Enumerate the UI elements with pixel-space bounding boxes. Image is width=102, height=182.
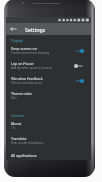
staticText: Translate [11, 136, 27, 141]
staticText: Lap on Pause [11, 61, 34, 66]
staticText: Theme color [11, 91, 33, 96]
staticText: Help us with translations [11, 141, 44, 145]
staticText: Vibration feedback [11, 76, 43, 81]
button[interactable]: All applications [6, 148, 91, 163]
staticText: Settings [25, 26, 46, 33]
staticText: About [11, 121, 22, 126]
staticText: Blue [11, 96, 17, 100]
button[interactable]: Theme color [6, 88, 91, 103]
staticText: All applications [11, 153, 37, 158]
button[interactable]: About [6, 118, 91, 133]
staticText: 1.0 [11, 126, 15, 130]
button[interactable]: Lap on Pause [6, 58, 91, 73]
button[interactable]: Keep screen on [6, 43, 91, 58]
staticText: Prevent phone from sleeping [11, 51, 50, 55]
staticText: Add lap when pause is pressed [11, 66, 52, 70]
button[interactable]: Translate [6, 133, 91, 148]
button[interactable]: Vibration feedback [6, 73, 91, 88]
staticText: Keep screen on [11, 46, 37, 51]
button[interactable]: Back [6, 23, 20, 35]
staticText: General [11, 113, 24, 118]
staticText: Vibrate on button press [11, 81, 42, 85]
staticText: Display [11, 38, 23, 43]
